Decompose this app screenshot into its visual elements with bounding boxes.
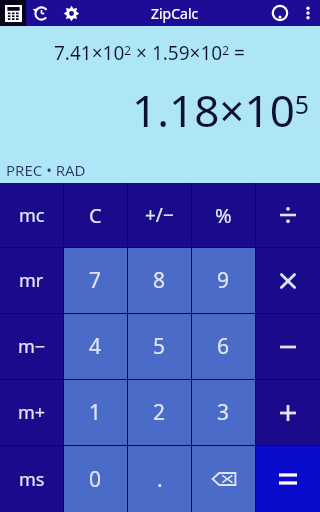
button[interactable]: More options [296,0,320,26]
button[interactable]: 7 [64,248,127,313]
button[interactable]: m+ [0,380,63,445]
button[interactable]: 6 [192,314,255,379]
button[interactable]: Help [264,0,296,26]
button[interactable]: Multiply [256,248,320,313]
button[interactable]: Settings [56,0,86,26]
button[interactable]: mc [0,183,63,247]
staticText: m− [18,334,46,359]
staticText: +/− [145,202,174,228]
staticText: ms [19,467,45,492]
button[interactable]: 3 [192,380,255,445]
staticText: 7.41×102 × 1.59×102 = [54,40,245,66]
button[interactable]: Add [256,380,320,445]
staticText: 8 [153,266,166,295]
staticText: mc [19,203,45,228]
button[interactable]: Equals [256,446,320,512]
staticText: 2 [153,398,166,427]
staticText: C [89,202,102,229]
staticText: PREC • RAD [6,160,86,180]
button[interactable]: C [64,183,127,247]
button[interactable]: 9 [192,248,255,313]
staticText: 9 [217,266,230,295]
staticText: 6 [217,332,230,361]
staticText: 7 [89,266,102,295]
button[interactable]: History [26,0,56,26]
button[interactable]: 0 [64,446,127,512]
button[interactable]: +/− [128,183,191,247]
staticText: 1.18×105 [132,80,310,140]
button[interactable]: m− [0,314,63,379]
button[interactable]: ms [0,446,63,512]
staticText: ZipCalc [151,4,199,23]
button[interactable]: Backspace [192,446,255,512]
button[interactable]: 4 [64,314,127,379]
staticText: 1 [89,398,102,427]
staticText: m+ [18,400,46,425]
staticText: mr [19,268,44,293]
button[interactable]: Calculator [0,0,26,26]
staticText: 4 [89,332,102,361]
staticText: 5 [153,332,166,361]
button[interactable]: 8 [128,248,191,313]
button[interactable]: Subtract [256,314,320,379]
staticText: % [215,202,232,229]
button[interactable]: % [192,183,255,247]
button[interactable]: 5 [128,314,191,379]
button[interactable]: . [128,446,191,512]
staticText: 0 [89,465,102,494]
button[interactable]: 1 [64,380,127,445]
button[interactable]: mr [0,248,63,313]
staticText: . [157,465,163,494]
button[interactable]: 2 [128,380,191,445]
staticText: 3 [217,398,230,427]
button[interactable]: Divide [256,183,320,247]
